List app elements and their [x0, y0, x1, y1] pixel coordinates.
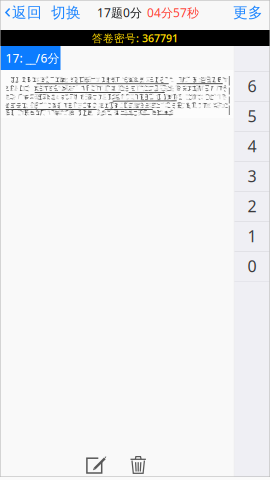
staticText: 3 — [247, 165, 256, 187]
staticText: 17题0分 — [97, 4, 142, 20]
button[interactable]: 17: __/6分 — [0, 46, 60, 70]
button[interactable]: 6 — [234, 71, 269, 101]
staticText: 17: __/6分 — [5, 50, 59, 66]
button[interactable]: 2 — [234, 191, 269, 221]
staticText: 更多 — [233, 3, 263, 21]
staticText: 5 — [247, 105, 256, 127]
staticText: 答卷密号: 367791 — [92, 31, 178, 45]
button[interactable]: 5 — [234, 101, 269, 131]
button[interactable]: 4 — [234, 131, 269, 161]
button[interactable]: 切换 — [45, 0, 87, 25]
staticText: 6 — [247, 75, 256, 97]
button[interactable]: Delete — [120, 445, 156, 479]
button[interactable]: 3 — [234, 161, 269, 191]
staticText: 2 — [247, 195, 256, 217]
staticText: 04分57秒 — [147, 4, 199, 20]
button[interactable]: 更多 — [225, 0, 270, 25]
staticText: 切换 — [51, 3, 81, 21]
button[interactable]: Annotate — [78, 445, 114, 479]
button[interactable]: 返回 — [0, 0, 45, 25]
staticText: 0 — [247, 255, 256, 277]
staticText: 1 — [247, 225, 256, 247]
staticText: 4 — [247, 135, 256, 157]
button[interactable]: 1 — [234, 221, 269, 251]
button[interactable]: 0 — [234, 251, 269, 281]
staticText: 返回 — [12, 3, 42, 21]
